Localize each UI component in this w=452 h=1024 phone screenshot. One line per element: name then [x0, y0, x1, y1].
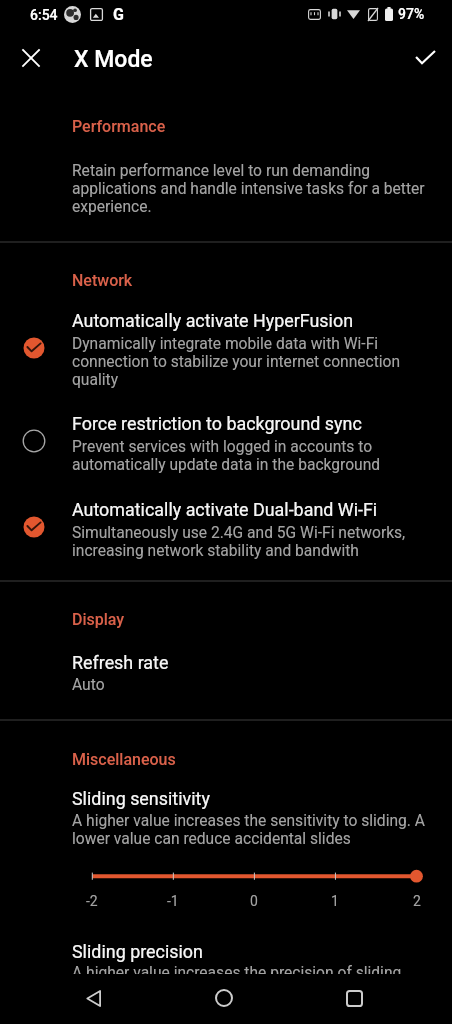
staticText: 0	[250, 893, 258, 909]
staticText: -2	[86, 893, 98, 909]
staticText: Retain performance level to run demandin…	[72, 162, 426, 216]
button[interactable]: Back	[70, 975, 116, 1021]
staticText: 6:54	[30, 7, 58, 23]
staticText: Sliding sensitivity	[72, 788, 210, 809]
staticText: Automatically activate HyperFusion	[72, 310, 354, 331]
button[interactable]: Recents	[331, 975, 377, 1021]
button[interactable]: Automatically activate HyperFusion	[0, 310, 452, 389]
staticText: 1	[331, 893, 339, 909]
staticText: Performance	[72, 117, 166, 136]
staticText: G	[113, 5, 124, 24]
staticText: 2	[413, 893, 421, 909]
button[interactable]: Confirm	[403, 35, 448, 80]
staticText: Display	[72, 610, 125, 629]
button[interactable]: Refresh rate	[0, 652, 452, 694]
staticText: X Mode	[74, 46, 153, 73]
staticText: Refresh rate	[72, 652, 169, 673]
button[interactable]: Home	[201, 975, 247, 1021]
staticText: Network	[72, 271, 133, 290]
button[interactable]: Force restriction to background sync	[0, 413, 452, 474]
staticText: Sliding precision	[72, 941, 203, 962]
staticText: Dynamically integrate mobile data with W…	[72, 335, 426, 389]
staticText: Force restriction to background sync	[72, 413, 362, 434]
staticText: Auto	[72, 676, 105, 694]
button[interactable]: Close	[8, 35, 53, 80]
staticText: Miscellaneous	[72, 750, 176, 769]
button[interactable]: Automatically activate Dual-band Wi-Fi	[0, 499, 452, 560]
staticText: A higher value increases the sensitivity…	[72, 812, 426, 848]
staticText: Prevent services with logged in accounts…	[72, 438, 426, 474]
staticText: -1	[167, 893, 179, 909]
staticText: Automatically activate Dual-band Wi-Fi	[72, 499, 378, 520]
staticText: A higher value increases the precision o…	[72, 964, 402, 974]
staticText: 97%	[398, 6, 425, 22]
staticText: Simultaneously use 2.4G and 5G Wi-Fi net…	[72, 524, 426, 560]
